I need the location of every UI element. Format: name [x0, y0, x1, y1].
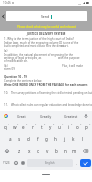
staticText: JUSTICE DELIVERY SYSTEM — [0, 32, 92, 36]
staticText: of modification on. — [4, 59, 28, 63]
button[interactable]: Enter — [80, 159, 91, 167]
staticText: 12. — [4, 111, 8, 115]
staticText: Write ONE WORD ONLY FROM THE PASSAGE for… — [4, 83, 88, 87]
staticText: z — [18, 148, 21, 154]
staticText: t — [41, 124, 43, 130]
staticText: The survey petitions of learning the civ… — [11, 91, 92, 95]
staticText: k — [72, 136, 75, 142]
button[interactable]: . — [74, 157, 80, 169]
staticText: 6 — [53, 123, 55, 126]
button[interactable]: Great — [9, 111, 33, 121]
staticText: Indian laws, much of the engraving volum… — [4, 41, 79, 45]
button[interactable]: v — [43, 145, 52, 157]
button[interactable]: q — [1, 121, 10, 133]
button[interactable]: g — [42, 133, 51, 145]
staticText: 2 — [17, 123, 19, 126]
button[interactable]: k — [69, 133, 78, 145]
staticText: In addition, the natural placement of en… — [4, 53, 73, 57]
staticText: y — [49, 124, 52, 130]
staticText: b — [55, 148, 58, 154]
button[interactable]: s — [15, 133, 24, 145]
button[interactable]: e — [19, 121, 28, 133]
staticText: built completed and most classic files t… — [4, 44, 64, 48]
staticText: d — [27, 136, 30, 142]
button[interactable]: o — [73, 121, 82, 133]
button[interactable]: u — [55, 121, 64, 133]
button[interactable]: d — [24, 133, 33, 145]
staticText: n — [64, 148, 67, 154]
staticText: writings of legal principles, as — [4, 56, 42, 60]
staticText: 8 — [71, 123, 73, 126]
staticText: Greatest — [64, 114, 78, 118]
staticText: v — [46, 148, 49, 154]
button[interactable]: Back — [0, 11, 6, 21]
staticText: Plus, it will make — [62, 64, 83, 68]
button[interactable]: c — [34, 145, 43, 157]
staticText: Send — [41, 14, 50, 19]
button[interactable]: b — [52, 145, 61, 157]
staticText: 11. — [4, 103, 9, 107]
staticText: Complete the sentence below. — [4, 79, 43, 83]
button[interactable]: Voice input — [83, 113, 89, 119]
staticText: s — [18, 136, 21, 142]
staticText: u — [58, 124, 61, 130]
staticText: Question 10 - 19 — [4, 75, 27, 79]
staticText: 1. Why is the term justice of the high c… — [4, 37, 74, 41]
staticText: 10. — [4, 91, 9, 95]
staticText: 1 — [8, 123, 10, 126]
button[interactable]: y — [46, 121, 55, 133]
button[interactable]: n — [61, 145, 70, 157]
button[interactable]: m — [70, 145, 79, 157]
staticText: Please check what may be useful and rele… — [17, 25, 76, 29]
button[interactable]: a — [5, 133, 15, 145]
button[interactable]: i — [64, 121, 73, 133]
staticText: i — [68, 124, 70, 130]
staticText: What collect rules can regular education… — [11, 103, 92, 107]
button[interactable]: Greatly — [33, 111, 58, 121]
staticText: 0 — [89, 123, 91, 126]
staticText: j — [64, 136, 66, 142]
button[interactable]: w — [10, 121, 19, 133]
button[interactable]: Emoji — [12, 157, 19, 169]
staticText: with the purpose — [58, 56, 80, 60]
button[interactable]: l — [78, 133, 87, 145]
staticText: l — [82, 136, 84, 142]
button[interactable]: j — [60, 133, 69, 145]
button[interactable]: Send — [6, 11, 87, 21]
staticText: g — [45, 136, 48, 142]
staticText: 3 — [26, 123, 28, 126]
button[interactable]: Greatest — [58, 111, 83, 121]
button[interactable]: t — [37, 121, 46, 133]
button[interactable]: f — [33, 133, 42, 145]
staticText: (b) — [4, 64, 8, 68]
button[interactable]: Google — [3, 113, 9, 119]
staticText: p — [85, 124, 88, 130]
button[interactable]: Backspace — [79, 145, 92, 157]
button[interactable]: h — [51, 133, 60, 145]
staticText: a — [9, 136, 12, 142]
button[interactable]: r — [28, 121, 37, 133]
staticText: 4 — [35, 123, 37, 126]
staticText: court. — [61, 44, 69, 48]
staticText: stem 09 — [4, 67, 15, 71]
staticText: w — [13, 124, 17, 130]
staticText: f — [37, 136, 39, 142]
button[interactable]: Settings — [19, 157, 26, 169]
staticText: . — [76, 161, 78, 166]
button[interactable]: p — [82, 121, 91, 133]
staticText: m — [72, 148, 77, 154]
button[interactable]: English — [27, 159, 73, 167]
staticText: 10:46 — [3, 1, 11, 5]
staticText: 4G — [78, 2, 82, 5]
button[interactable]: x — [24, 145, 34, 157]
staticText: e — [22, 124, 25, 130]
button[interactable]: ?123 — [1, 157, 12, 169]
staticText: Greatly — [40, 114, 52, 118]
button[interactable]: Shift — [0, 145, 14, 157]
staticText: o — [76, 124, 79, 130]
button[interactable]: z — [14, 145, 24, 157]
staticText: q — [4, 124, 7, 130]
staticText: (a) — [4, 49, 8, 53]
staticText: 7 — [62, 123, 64, 126]
staticText: r — [32, 124, 34, 130]
